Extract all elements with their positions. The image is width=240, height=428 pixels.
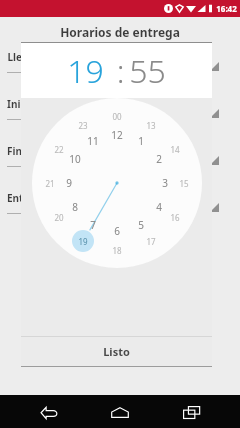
button[interactable]: 22: [50, 142, 68, 156]
button[interactable]: Recent apps: [169, 398, 213, 426]
button[interactable]: 14: [166, 142, 184, 156]
staticText: Inicio: [7, 97, 35, 111]
staticText: 13: [146, 120, 156, 131]
button[interactable]: 13: [142, 118, 160, 132]
staticText: 19: [78, 236, 88, 247]
staticText: :: [104, 49, 129, 93]
staticText: 21: [45, 178, 55, 189]
staticText: 18: [112, 245, 122, 256]
button[interactable]: 9: [60, 175, 78, 191]
staticText: 6: [114, 224, 120, 238]
staticText: 9: [66, 176, 72, 190]
button[interactable]: 20: [50, 210, 68, 224]
staticText: Fin: [7, 144, 22, 158]
staticText: Horarios de entrega: [60, 24, 180, 40]
staticText: 23: [78, 120, 88, 131]
staticText: 17: [146, 236, 156, 247]
button[interactable]: 11: [84, 133, 102, 149]
button[interactable]: Listo: [21, 337, 212, 366]
button[interactable]: 10: [66, 151, 84, 167]
button[interactable]: 5: [132, 217, 150, 233]
staticText: Entrega: [7, 191, 46, 205]
button[interactable]: 00: [108, 109, 126, 123]
staticText: 3: [162, 176, 168, 190]
staticText: 11: [87, 134, 99, 148]
button[interactable]: 1: [132, 133, 150, 149]
staticText: 20: [54, 212, 64, 223]
button[interactable]: 18: [108, 243, 126, 257]
button[interactable]: Back: [27, 398, 71, 426]
button[interactable]: 15: [175, 176, 193, 190]
staticText: 10: [69, 152, 81, 166]
staticText: 16: [170, 212, 180, 223]
button[interactable]: 12: [108, 127, 126, 143]
staticText: 12: [111, 128, 123, 142]
button[interactable]: 19: [74, 234, 92, 248]
staticText: 19: [67, 49, 104, 93]
button[interactable]: 8: [66, 199, 84, 215]
staticText: 2: [156, 152, 162, 166]
staticText: 16:42: [216, 3, 237, 14]
button[interactable]: Home: [98, 398, 142, 426]
staticText: 1: [138, 134, 144, 148]
button[interactable]: 7: [84, 217, 102, 233]
button[interactable]: 23: [74, 118, 92, 132]
staticText: 22: [54, 144, 64, 155]
staticText: 55: [129, 49, 166, 93]
button[interactable]: 4: [150, 199, 168, 215]
button[interactable]: 3: [156, 175, 174, 191]
button[interactable]: 17: [142, 234, 160, 248]
button[interactable]: 2: [150, 151, 168, 167]
button[interactable]: 6: [108, 223, 126, 239]
staticText: 5: [138, 218, 144, 232]
staticText: Llegada: [7, 50, 47, 64]
staticText: 7: [90, 218, 96, 232]
staticText: 00: [112, 111, 122, 122]
staticText: 15: [179, 178, 189, 189]
staticText: Listo: [103, 344, 130, 359]
staticText: 14: [170, 144, 180, 155]
staticText: 8: [72, 200, 78, 214]
staticText: 4: [156, 200, 162, 214]
button[interactable]: 21: [41, 176, 59, 190]
button[interactable]: 16: [166, 210, 184, 224]
